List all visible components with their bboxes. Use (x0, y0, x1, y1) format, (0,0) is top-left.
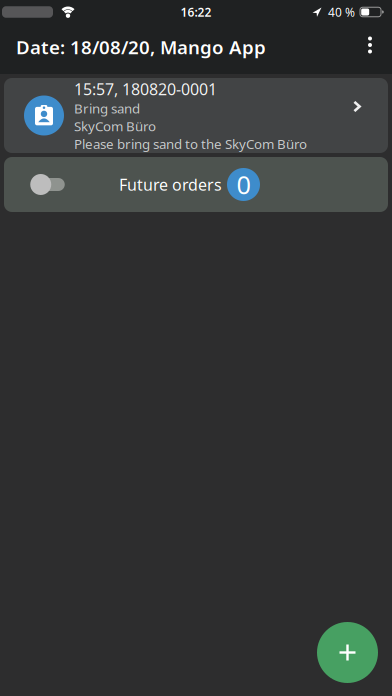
staticText: Future orders (119, 174, 222, 195)
staticText: Bring sand (74, 100, 140, 117)
button[interactable]: 15:57, 180820-0001 (4, 78, 388, 153)
button[interactable]: Add order (317, 622, 378, 683)
staticText: 40 % (328, 4, 355, 20)
staticText: SkyCom Büro (74, 117, 156, 135)
staticText: 0 (236, 168, 250, 201)
staticText: 15:57, 180820-0001 (74, 78, 217, 99)
button[interactable]: Future orders (4, 174, 67, 195)
button[interactable]: More options (348, 24, 392, 74)
staticText: Please bring sand to the SkyCom Büro (74, 135, 307, 153)
staticText: 16:22 (180, 4, 211, 20)
staticText: Date: 18/08/20, Mango App (16, 35, 266, 59)
